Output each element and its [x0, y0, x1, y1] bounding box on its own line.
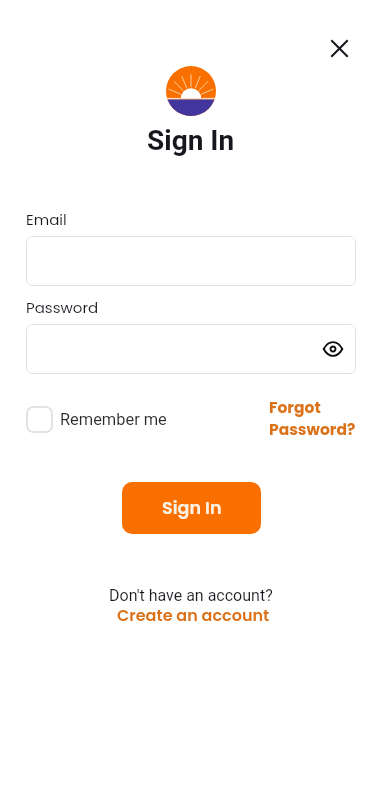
button[interactable]: Remember me [26, 400, 167, 438]
button[interactable]: Forgot Password? [269, 397, 356, 441]
button[interactable]: Show password [317, 333, 349, 365]
staticText: Remember me [60, 410, 167, 429]
button[interactable]: Create an account [117, 604, 270, 626]
button[interactable]: Sign In [122, 482, 261, 534]
staticText: Forgot Password? [269, 397, 356, 441]
staticText: Create an account [117, 604, 270, 626]
button[interactable]: Show password [26, 324, 356, 374]
button[interactable]: Close [319, 28, 359, 68]
staticText: Don't have an account? [109, 586, 273, 605]
staticText: Sign In [147, 124, 235, 157]
button[interactable] [26, 236, 356, 286]
staticText: Sign In [162, 496, 222, 521]
staticText: Email [26, 209, 67, 230]
staticText: Password [26, 297, 99, 318]
